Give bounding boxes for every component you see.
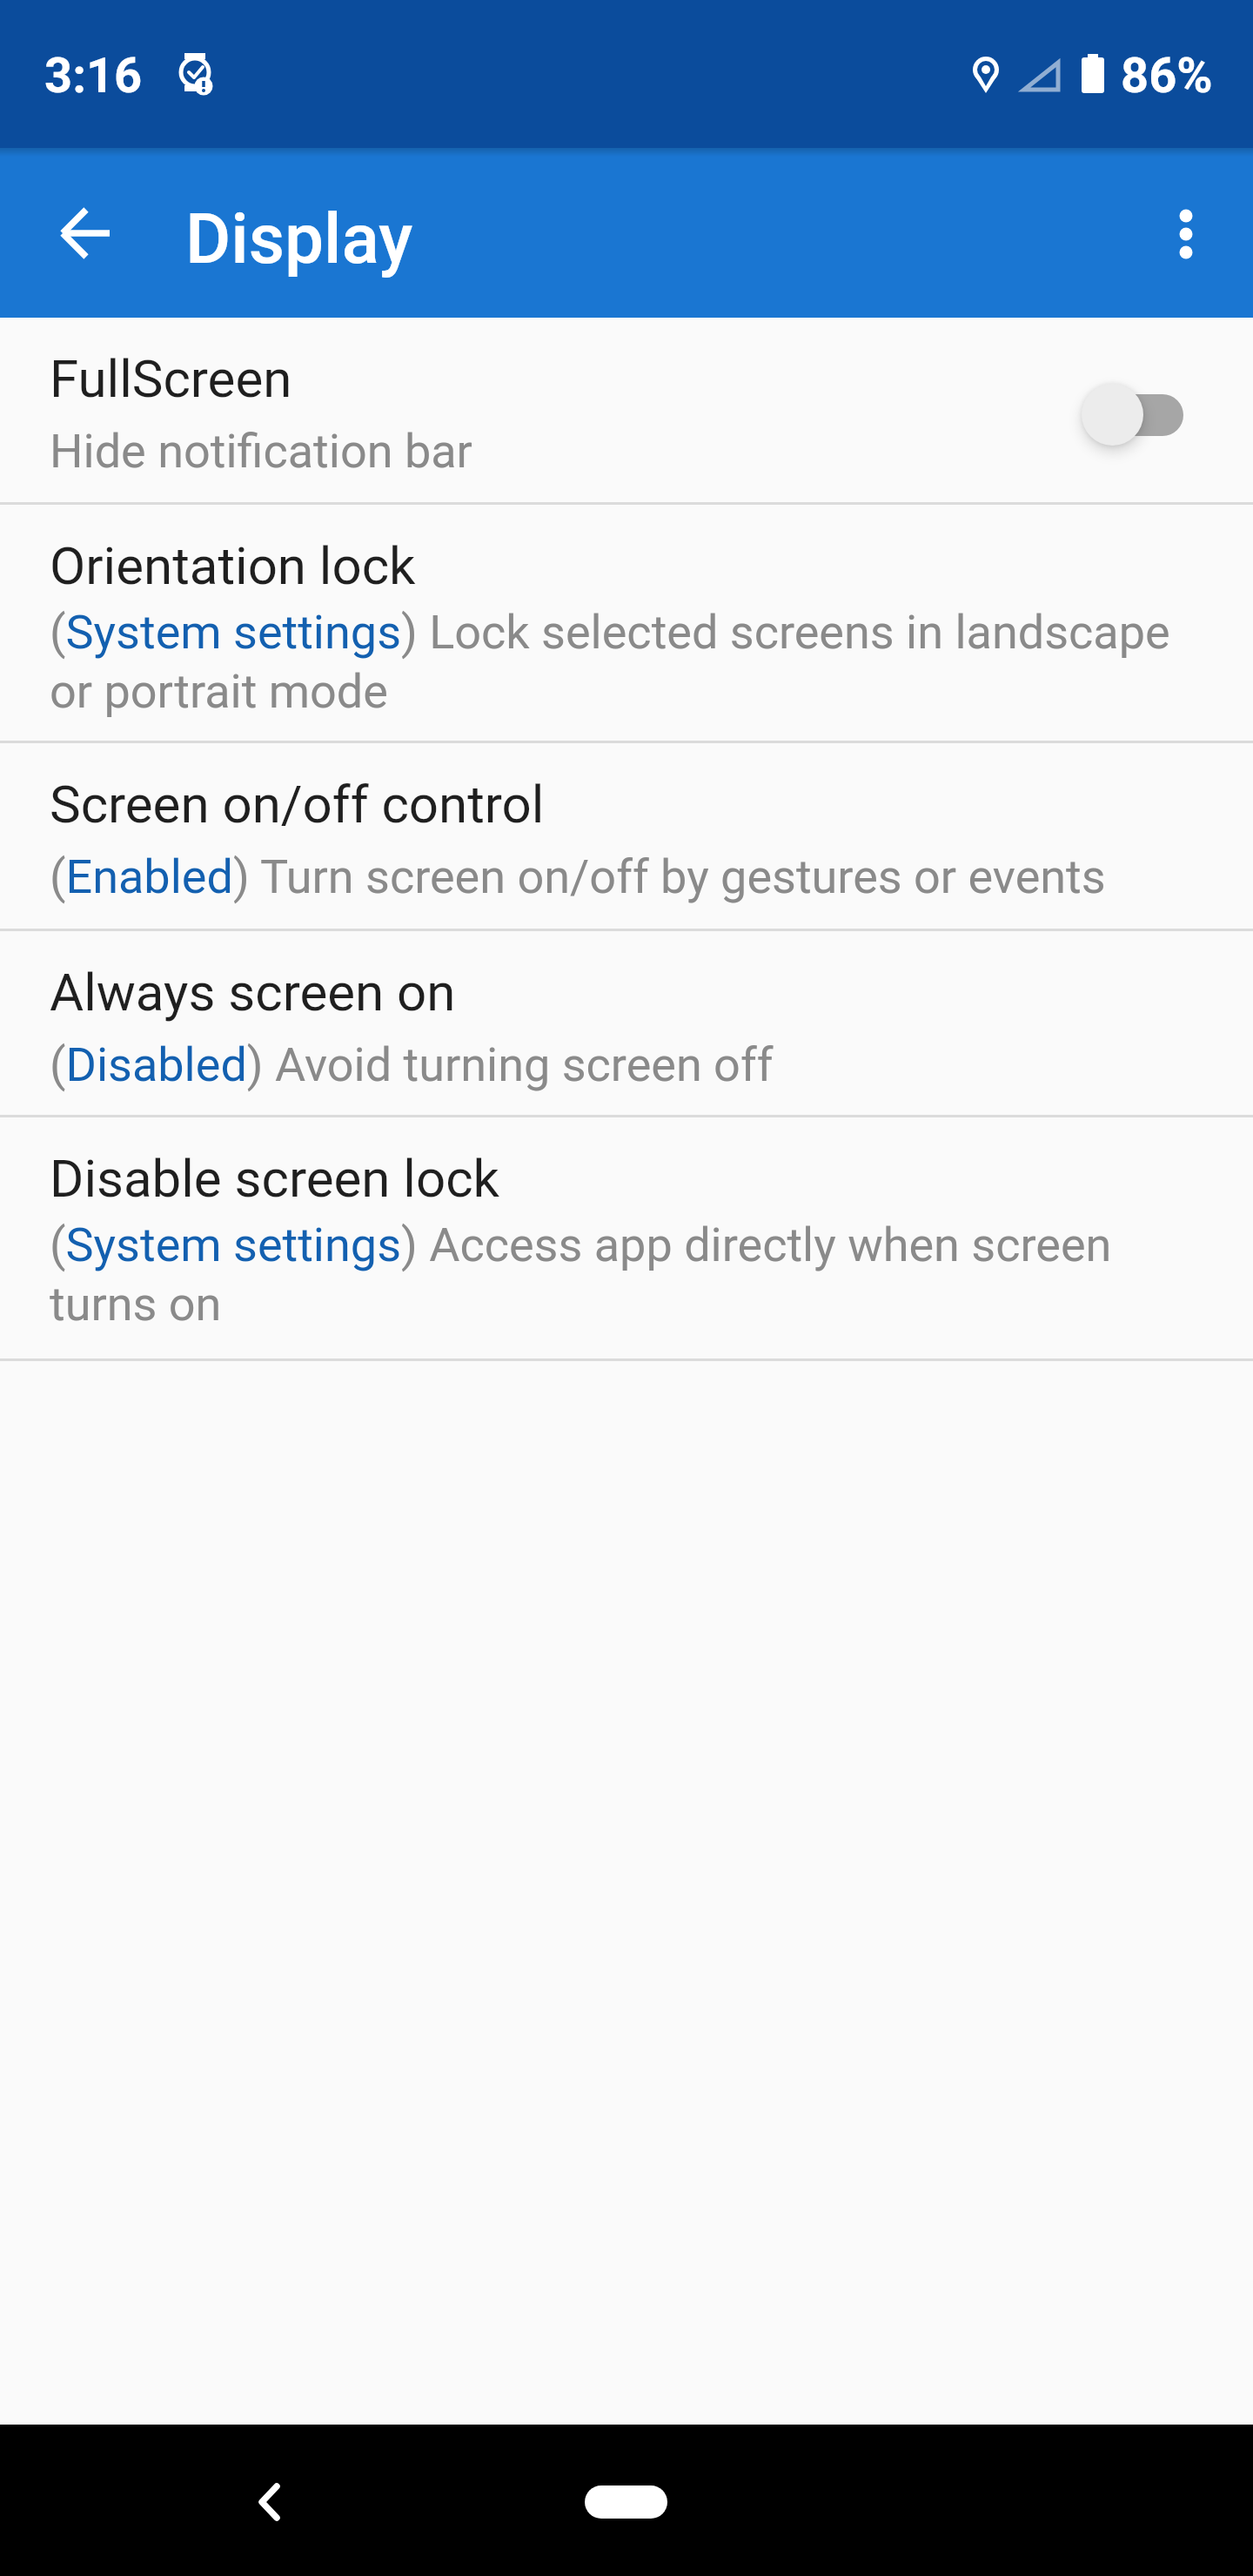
staticText: (Disabled) Avoid turning screen off: [50, 1037, 774, 1092]
button[interactable]: Disable screen lock: [0, 1117, 1253, 1361]
staticText: (System settings) Access app directly wh…: [50, 1218, 1112, 1272]
button[interactable]: [39, 186, 133, 280]
staticText: Disable screen lock: [50, 1148, 499, 1209]
staticText: turns on: [50, 1277, 222, 1332]
button[interactable]: FullScreen: [0, 318, 1253, 505]
staticText: Screen on/off control: [50, 774, 545, 835]
button[interactable]: Always screen on: [0, 931, 1253, 1117]
button[interactable]: [223, 2455, 317, 2549]
staticText: or portrait mode: [50, 664, 388, 719]
staticText: Display: [185, 198, 413, 280]
button[interactable]: [1139, 186, 1233, 280]
staticText: FullScreen: [50, 348, 292, 409]
staticText: Orientation lock: [50, 535, 416, 596]
button[interactable]: Orientation lock: [0, 505, 1253, 743]
staticText: Hide notification bar: [50, 424, 472, 479]
staticText: 86%: [1121, 47, 1213, 104]
staticText: (Enabled) Turn screen on/off by gestures…: [50, 849, 1106, 904]
staticText: Always screen on: [50, 962, 456, 1023]
staticText: 3:16: [44, 47, 143, 104]
button[interactable]: [585, 2485, 667, 2519]
button[interactable]: Screen on/off control: [0, 743, 1253, 931]
staticText: (System settings) Lock selected screens …: [50, 605, 1170, 660]
